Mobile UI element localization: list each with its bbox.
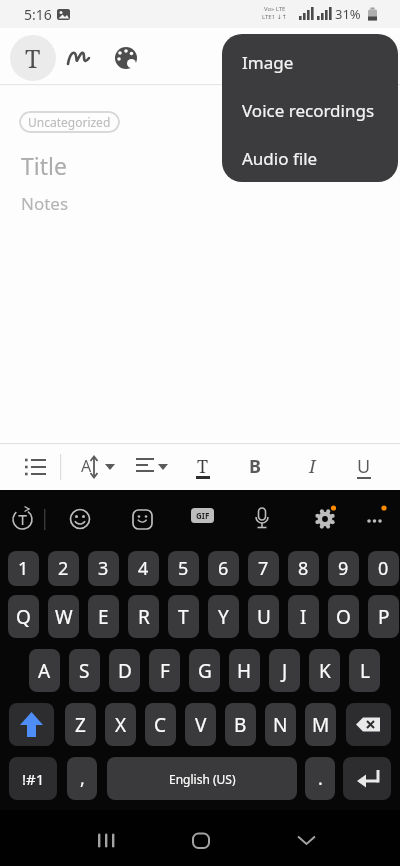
staticText: 5:16 — [24, 5, 52, 24]
staticText: O — [336, 604, 351, 630]
button[interactable]: U — [248, 595, 279, 638]
staticText: X — [115, 712, 127, 738]
staticText: W — [55, 604, 73, 630]
staticText: V — [195, 712, 207, 738]
button[interactable]: , — [67, 757, 97, 800]
staticText: T — [197, 454, 209, 479]
button[interactable] — [343, 757, 391, 800]
staticText: R — [138, 604, 150, 630]
button[interactable]: A — [29, 649, 60, 692]
staticText: I — [309, 454, 316, 479]
staticText: 9 — [338, 556, 349, 581]
button[interactable] — [184, 501, 220, 537]
staticText: U — [257, 604, 271, 630]
staticText: U — [357, 454, 371, 479]
staticText: !#1 — [22, 769, 45, 789]
staticText: A — [38, 658, 51, 684]
button[interactable] — [346, 703, 391, 746]
staticText: Notes — [21, 192, 69, 215]
button[interactable]: Audio file — [222, 134, 398, 182]
button[interactable]: B — [241, 451, 269, 481]
button[interactable]: N — [265, 703, 296, 746]
staticText: L — [360, 658, 370, 684]
button[interactable]: X — [105, 703, 136, 746]
staticText: Voice recordings — [242, 99, 375, 122]
button[interactable]: 5 — [168, 551, 199, 586]
button[interactable]: 7 — [248, 551, 279, 586]
staticText: English (US) — [169, 771, 236, 787]
button[interactable]: H — [229, 649, 260, 692]
staticText: D — [118, 658, 132, 684]
button[interactable]: 4 — [128, 551, 159, 586]
button[interactable]: K — [309, 649, 340, 692]
staticText: LTE1 ↓↑ — [262, 13, 287, 21]
button[interactable]: !#1 — [9, 757, 57, 800]
staticText: 31% — [335, 5, 361, 23]
button[interactable]: I — [288, 595, 319, 638]
button[interactable]: T — [189, 451, 217, 481]
button[interactable]: B — [225, 703, 256, 746]
staticText: N — [273, 712, 288, 738]
button[interactable] — [357, 501, 393, 537]
button[interactable]: 0 — [368, 551, 399, 586]
staticText: F — [160, 658, 170, 684]
button[interactable]: V — [185, 703, 216, 746]
staticText: S — [79, 658, 90, 684]
button[interactable] — [62, 41, 96, 75]
button[interactable]: T — [10, 35, 56, 81]
staticText: H — [237, 658, 252, 684]
staticText: , — [80, 766, 85, 791]
button[interactable]: O — [328, 595, 359, 638]
button[interactable]: Uncategorized — [19, 111, 120, 133]
staticText: J — [282, 658, 288, 684]
staticText: Y — [218, 604, 229, 630]
button[interactable]: R — [128, 595, 159, 638]
button[interactable]: 3 — [88, 551, 119, 586]
button[interactable]: 6 — [208, 551, 239, 586]
button[interactable]: 9 — [328, 551, 359, 586]
staticText: 1 — [18, 556, 29, 581]
button[interactable] — [124, 501, 160, 537]
button[interactable] — [4, 501, 40, 537]
button[interactable]: English (US) — [107, 757, 297, 800]
button[interactable]: Y — [208, 595, 239, 638]
staticText: Z — [75, 712, 86, 738]
staticText: P — [378, 604, 390, 630]
button[interactable]: Image — [222, 38, 398, 86]
button[interactable]: I — [298, 451, 326, 481]
staticText: 5 — [178, 556, 189, 581]
button[interactable] — [109, 41, 143, 75]
button[interactable]: F — [149, 649, 180, 692]
button[interactable]: . — [305, 757, 335, 800]
button[interactable]: E — [88, 595, 119, 638]
button[interactable]: L — [349, 649, 380, 692]
button[interactable]: U — [350, 451, 378, 481]
button[interactable]: Voice recordings — [222, 86, 398, 134]
button[interactable]: G — [189, 649, 220, 692]
button[interactable] — [9, 703, 54, 746]
staticText: G — [198, 658, 212, 684]
staticText: M — [312, 712, 330, 738]
button[interactable]: W — [48, 595, 79, 638]
staticText: GIF — [196, 510, 210, 521]
button[interactable]: 2 — [48, 551, 79, 586]
staticText: . — [318, 766, 323, 791]
staticText: B — [249, 454, 261, 479]
button[interactable] — [307, 501, 343, 537]
button[interactable]: C — [145, 703, 176, 746]
button[interactable]: T — [168, 595, 199, 638]
button[interactable]: J — [269, 649, 300, 692]
staticText: 7 — [258, 556, 269, 581]
button[interactable]: A — [74, 451, 98, 481]
button[interactable]: P — [368, 595, 399, 638]
button[interactable]: 1 — [8, 551, 39, 586]
button[interactable]: Z — [65, 703, 96, 746]
button[interactable]: 8 — [288, 551, 319, 586]
button[interactable]: S — [69, 649, 100, 692]
button[interactable]: D — [109, 649, 140, 692]
button[interactable]: Q — [8, 595, 39, 638]
button[interactable] — [62, 501, 98, 537]
button[interactable]: M — [305, 703, 336, 746]
staticText: B — [234, 712, 247, 738]
button[interactable] — [244, 501, 280, 537]
